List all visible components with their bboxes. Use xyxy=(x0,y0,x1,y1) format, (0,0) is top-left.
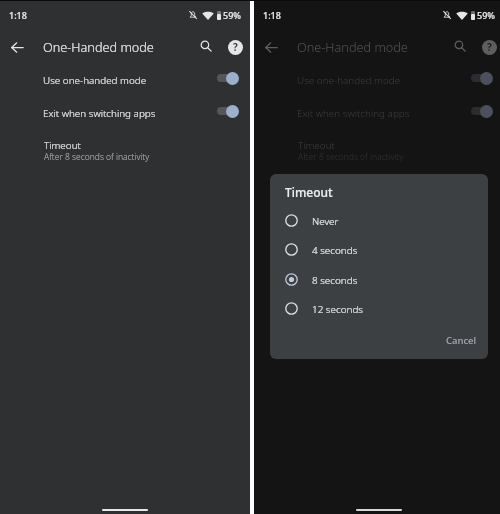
button[interactable]: Use one-handed mode xyxy=(0,62,250,94)
staticText: ? xyxy=(487,40,492,54)
button[interactable]: Help xyxy=(478,36,500,58)
button[interactable]: Never xyxy=(270,206,488,235)
staticText: Cancel xyxy=(446,334,477,347)
staticText: 59% xyxy=(223,9,241,21)
button[interactable]: Back xyxy=(259,35,283,59)
staticText: Timeout xyxy=(44,138,81,151)
staticText: 4 seconds xyxy=(312,243,358,256)
staticText: After 8 seconds of inactivity xyxy=(298,151,404,163)
staticText: One-Handed mode xyxy=(297,38,408,55)
staticText: Use one-handed mode xyxy=(297,73,401,86)
button[interactable]: Timeout xyxy=(254,134,500,166)
button[interactable]: Use one-handed mode xyxy=(254,62,500,94)
button[interactable]: Exit when switching apps xyxy=(254,95,500,127)
staticText: Exit when switching apps xyxy=(43,106,156,119)
staticText: 1:18 xyxy=(9,9,27,21)
button[interactable]: Search xyxy=(449,35,471,57)
staticText: Exit when switching apps xyxy=(297,106,410,119)
button[interactable]: 8 seconds xyxy=(270,265,488,294)
staticText: 59% xyxy=(477,9,495,21)
staticText: After 8 seconds of inactivity xyxy=(44,151,150,163)
staticText: One-Handed mode xyxy=(43,38,154,55)
staticText: Use one-handed mode xyxy=(43,73,147,86)
button[interactable]: Timeout xyxy=(0,134,250,166)
button[interactable]: Exit when switching apps xyxy=(0,95,250,127)
staticText: Timeout xyxy=(285,184,333,200)
button[interactable]: Cancel xyxy=(442,332,481,349)
button[interactable]: Search xyxy=(195,35,217,57)
button[interactable]: 4 seconds xyxy=(270,235,488,264)
button[interactable]: Help xyxy=(224,36,246,58)
staticText: 8 seconds xyxy=(312,273,358,286)
staticText: ? xyxy=(233,40,238,54)
staticText: 12 seconds xyxy=(312,302,363,315)
button[interactable]: Back xyxy=(5,35,29,59)
staticText: 1:18 xyxy=(263,9,281,21)
staticText: Timeout xyxy=(298,138,335,151)
staticText: Never xyxy=(312,214,339,227)
button[interactable]: 12 seconds xyxy=(270,294,488,323)
